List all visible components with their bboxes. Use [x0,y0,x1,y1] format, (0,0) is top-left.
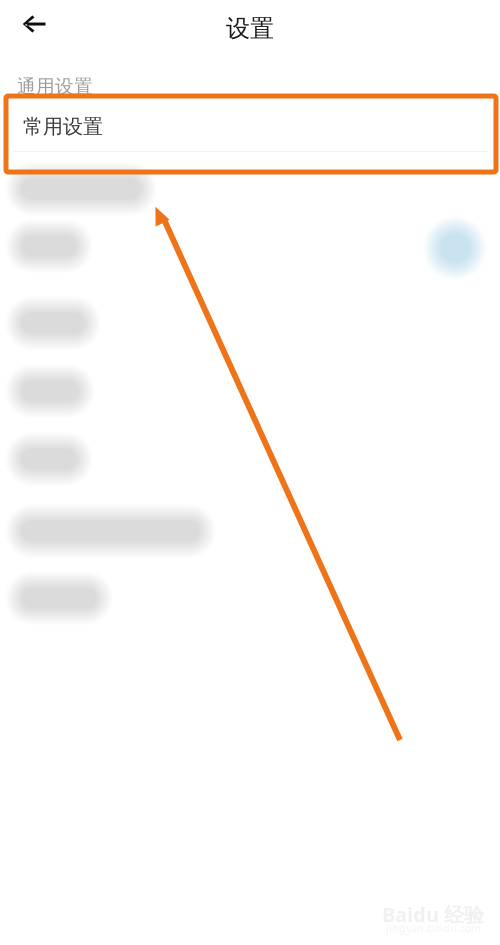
button[interactable]: 常用设置 [9,99,491,171]
staticText: jingyan.baidu.com [386,921,481,935]
staticText: 常用设置 [23,114,103,139]
button[interactable]: Back [11,1,57,47]
staticText: 设置 [226,14,274,43]
staticText: Baidu 经验 [382,901,484,928]
staticText: 通用设置 [17,75,93,98]
